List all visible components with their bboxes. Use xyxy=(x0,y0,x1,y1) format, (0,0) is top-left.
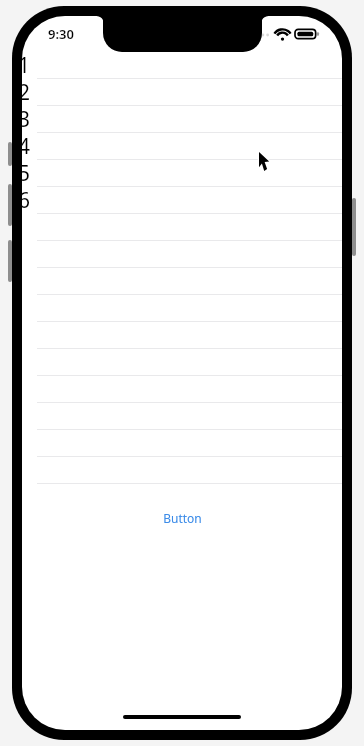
button[interactable] xyxy=(22,349,342,376)
other: Battery xyxy=(295,28,319,40)
other: Cellular signal xyxy=(251,29,270,39)
button[interactable]: 3 xyxy=(22,106,342,133)
button[interactable] xyxy=(22,457,342,484)
button[interactable]: 5 xyxy=(22,160,342,187)
button[interactable] xyxy=(22,295,342,322)
button[interactable]: Button xyxy=(149,503,216,533)
button[interactable]: 6 xyxy=(22,187,342,214)
button[interactable] xyxy=(22,241,342,268)
button[interactable] xyxy=(22,376,342,403)
button[interactable] xyxy=(22,268,342,295)
staticText: 9:30 xyxy=(48,25,74,43)
button[interactable]: 4 xyxy=(22,133,342,160)
staticText: Button xyxy=(163,510,202,526)
button[interactable] xyxy=(22,214,342,241)
other: Wi-Fi xyxy=(275,29,290,40)
button[interactable]: 2 xyxy=(22,79,342,106)
button[interactable] xyxy=(22,322,342,349)
staticText: 2 xyxy=(22,78,31,105)
button[interactable]: 1 xyxy=(22,52,342,79)
staticText: 3 xyxy=(22,105,31,132)
staticText: 4 xyxy=(22,132,31,159)
staticText: 6 xyxy=(22,186,31,213)
staticText: 5 xyxy=(22,159,31,186)
staticText: 1 xyxy=(22,51,31,78)
button[interactable] xyxy=(22,403,342,430)
button[interactable] xyxy=(22,430,342,457)
